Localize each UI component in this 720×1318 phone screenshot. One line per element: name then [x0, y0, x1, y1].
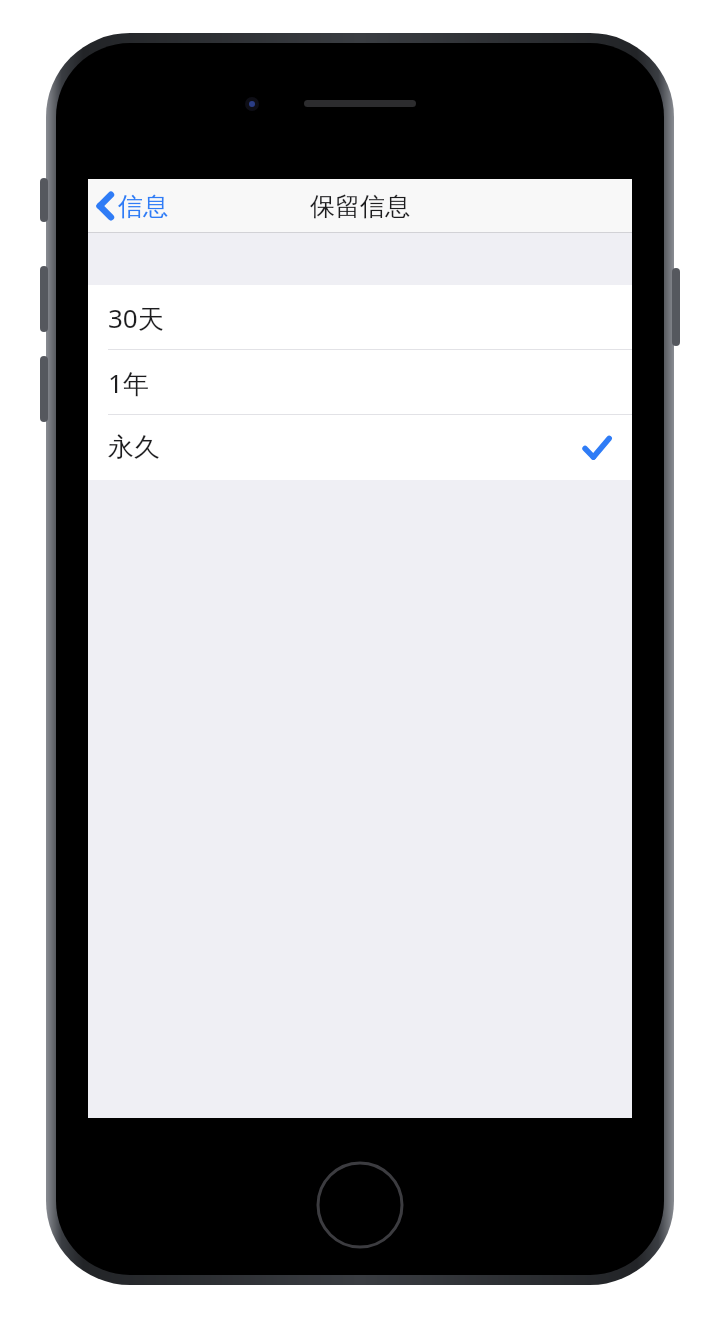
other: Mute switch [40, 178, 48, 222]
staticText: 30天 [108, 300, 164, 336]
staticText: 信息 [118, 191, 168, 222]
staticText: 1年 [108, 365, 149, 401]
button[interactable]: 30天 [88, 285, 632, 350]
button[interactable]: 永久 [88, 415, 632, 480]
other: Volume down [40, 356, 48, 422]
button[interactable]: 信息 [88, 179, 178, 233]
staticText: 保留信息 [310, 191, 410, 222]
other: Power [672, 268, 680, 346]
other: Home [316, 1161, 404, 1249]
button[interactable]: 1年 [88, 350, 632, 415]
staticText: 永久 [108, 431, 160, 464]
other: Volume up [40, 266, 48, 332]
